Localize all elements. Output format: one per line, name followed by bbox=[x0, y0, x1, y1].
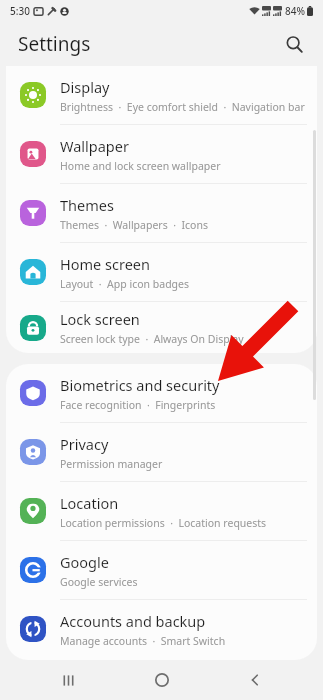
button[interactable]: Google bbox=[6, 541, 317, 600]
button[interactable]: Search bbox=[275, 25, 313, 63]
button[interactable]: Themes bbox=[6, 184, 317, 243]
button[interactable]: Back bbox=[229, 660, 281, 700]
button[interactable]: Accounts and backup bbox=[6, 600, 317, 658]
staticText: Themes · Wallpapers · Icons bbox=[60, 218, 208, 232]
button[interactable]: Privacy bbox=[6, 423, 317, 482]
staticText: Wallpaper bbox=[60, 136, 129, 156]
staticText: Accounts and backup bbox=[60, 611, 206, 631]
staticText: Location bbox=[60, 493, 119, 513]
staticText: Display bbox=[60, 77, 110, 97]
staticText: Permission manager bbox=[60, 457, 163, 471]
staticText: Themes bbox=[60, 195, 114, 215]
staticText: Screen lock type · Always On Display bbox=[60, 332, 244, 346]
staticText: Google services bbox=[60, 575, 138, 589]
button[interactable]: Display bbox=[6, 66, 317, 125]
staticText: Lock screen bbox=[60, 309, 140, 329]
button[interactable]: Biometrics and security bbox=[6, 364, 317, 423]
staticText: Privacy bbox=[60, 434, 109, 454]
staticText: 5:30 bbox=[10, 4, 30, 18]
staticText: Home screen bbox=[60, 254, 150, 274]
staticText: Location permissions · Location requests bbox=[60, 516, 267, 530]
staticText: Google bbox=[60, 552, 109, 572]
button[interactable]: Home screen bbox=[6, 243, 317, 302]
staticText: Biometrics and security bbox=[60, 375, 220, 395]
staticText: Home and lock screen wallpaper bbox=[60, 159, 221, 173]
button[interactable]: Recents bbox=[42, 660, 94, 700]
staticText: Manage accounts · Smart Switch bbox=[60, 634, 226, 648]
staticText: Face recognition · Fingerprints bbox=[60, 398, 216, 412]
staticText: Layout · App icon badges bbox=[60, 277, 190, 291]
button[interactable]: Home bbox=[136, 660, 188, 700]
staticText: 84% bbox=[285, 4, 305, 18]
button[interactable]: Wallpaper bbox=[6, 125, 317, 184]
staticText: Settings bbox=[18, 31, 91, 57]
button[interactable]: Lock screen bbox=[6, 302, 317, 353]
staticText: Brightness · Eye comfort shield · Naviga… bbox=[60, 100, 305, 114]
button[interactable]: Location bbox=[6, 482, 317, 541]
